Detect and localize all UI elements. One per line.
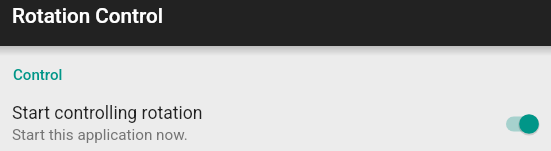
staticText: Control [13, 66, 63, 84]
button[interactable]: Start controlling rotation switch [495, 103, 539, 145]
staticText: Start this application now. [12, 126, 188, 144]
staticText: Start controlling rotation [12, 103, 203, 124]
button[interactable]: Start controlling rotation [0, 92, 551, 150]
staticText: Rotation Control [12, 4, 164, 28]
